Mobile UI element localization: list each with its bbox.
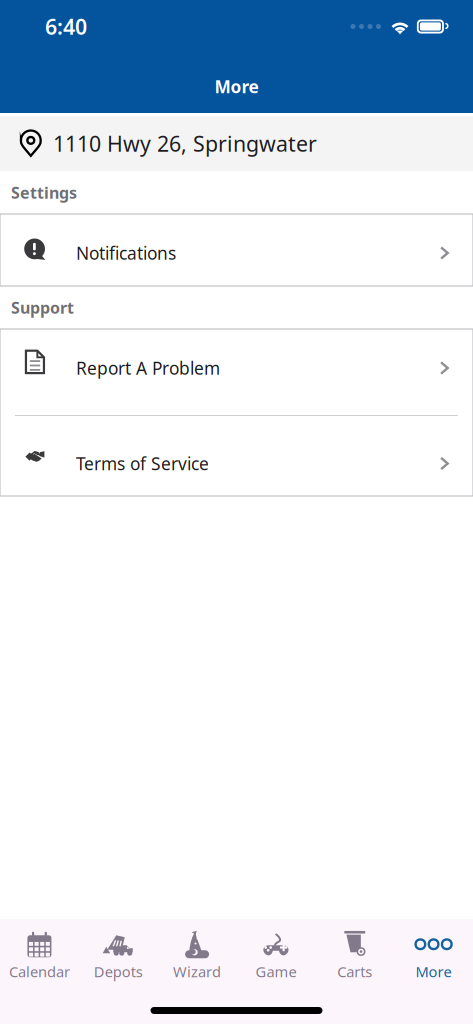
staticText: 6:40 <box>45 12 87 41</box>
staticText: Support <box>11 297 74 318</box>
button[interactable]: Carts <box>315 925 394 985</box>
button[interactable]: Notifications <box>0 214 473 286</box>
staticText: Terms of Service <box>76 452 209 475</box>
staticText: Carts <box>337 962 372 981</box>
button[interactable]: Wizard <box>158 925 236 985</box>
staticText: More <box>214 75 258 98</box>
staticText: Notifications <box>76 241 176 264</box>
staticText: Depots <box>94 962 143 981</box>
button[interactable]: Depots <box>79 925 158 985</box>
button[interactable]: More <box>394 925 473 985</box>
staticText: Settings <box>11 182 77 203</box>
staticText: Calendar <box>9 962 70 981</box>
staticText: Game <box>255 962 296 981</box>
staticText: 1110 Hwy 26, Springwater <box>53 129 317 158</box>
staticText: More <box>416 962 452 981</box>
button[interactable]: Calendar <box>0 925 79 985</box>
button[interactable]: Game <box>236 925 315 985</box>
staticText: Report A Problem <box>76 356 220 379</box>
staticText: Wizard <box>173 962 221 981</box>
button[interactable]: Terms of Service <box>0 431 473 496</box>
button[interactable]: Report A Problem <box>0 329 473 407</box>
